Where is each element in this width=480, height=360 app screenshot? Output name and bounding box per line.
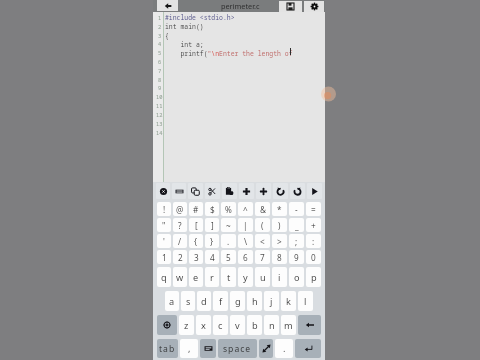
button[interactable]: 3	[189, 250, 203, 264]
button[interactable]: h	[247, 291, 262, 311]
button[interactable]: _	[289, 218, 304, 232]
button[interactable]: 7	[255, 250, 270, 264]
button[interactable]: m	[281, 315, 296, 335]
staticText: j	[270, 295, 273, 308]
button[interactable]: Redo	[290, 183, 305, 199]
button[interactable]: u	[255, 267, 270, 287]
button[interactable]: z	[179, 315, 194, 335]
button[interactable]: <	[255, 234, 270, 248]
staticText: 10	[156, 93, 163, 100]
button[interactable]: ~	[221, 218, 236, 232]
button[interactable]: ;	[289, 234, 304, 248]
button[interactable]: #	[189, 202, 203, 216]
button[interactable]: .	[275, 339, 293, 358]
button[interactable]: Close	[156, 183, 170, 199]
button[interactable]: i	[272, 267, 287, 287]
button[interactable]: !	[157, 202, 171, 216]
button[interactable]: %	[221, 202, 236, 216]
button[interactable]: Add	[239, 183, 254, 199]
button[interactable]: tab	[157, 339, 178, 358]
button[interactable]: f	[213, 291, 228, 311]
staticText: {	[165, 31, 169, 40]
button[interactable]: q	[157, 267, 171, 287]
button[interactable]: Run	[307, 183, 322, 199]
button[interactable]: 0	[306, 250, 321, 264]
button[interactable]: |	[238, 218, 253, 232]
button[interactable]	[157, 315, 177, 335]
button[interactable]: )	[272, 218, 287, 232]
button[interactable]	[295, 339, 321, 358]
button[interactable]: ?	[173, 218, 187, 232]
button[interactable]	[259, 339, 273, 358]
button[interactable]: Keyboard	[172, 183, 186, 199]
button[interactable]: \	[238, 234, 253, 248]
button[interactable]: g	[230, 291, 245, 311]
button[interactable]: .	[221, 234, 236, 248]
button[interactable]: o	[289, 267, 304, 287]
button[interactable]: *	[272, 202, 287, 216]
button[interactable]: }	[205, 234, 219, 248]
button[interactable]: Paste	[222, 183, 237, 199]
button[interactable]: a	[165, 291, 179, 311]
button[interactable]: 9	[289, 250, 304, 264]
button[interactable]: >	[272, 234, 287, 248]
button[interactable]: k	[281, 291, 296, 311]
button[interactable]: Copy	[188, 183, 203, 199]
staticText: 4	[158, 40, 162, 47]
button[interactable]: p	[306, 267, 321, 287]
button[interactable]: =	[306, 202, 321, 216]
button[interactable]: Move	[256, 183, 271, 199]
button[interactable]: '	[157, 234, 171, 248]
staticText: '	[163, 236, 165, 247]
staticText: e	[193, 271, 199, 284]
button[interactable]: 4	[205, 250, 219, 264]
button[interactable]: 6	[238, 250, 253, 264]
button[interactable]: ,	[180, 339, 198, 358]
button[interactable]: s	[181, 291, 195, 311]
button[interactable]: l	[298, 291, 313, 311]
staticText: n	[269, 319, 275, 332]
button[interactable]: {	[189, 234, 203, 248]
button[interactable]: $	[205, 202, 219, 216]
button[interactable]: Settings	[304, 1, 324, 12]
staticText: 11	[156, 102, 163, 109]
button[interactable]: &	[255, 202, 270, 216]
button[interactable]: Undo	[273, 183, 288, 199]
button[interactable]	[200, 339, 216, 358]
button[interactable]: c	[213, 315, 228, 335]
button[interactable]: b	[247, 315, 262, 335]
button[interactable]: /	[173, 234, 187, 248]
button[interactable]: v	[230, 315, 245, 335]
button[interactable]: ^	[238, 202, 253, 216]
button[interactable]: n	[264, 315, 279, 335]
button[interactable]: 8	[272, 250, 287, 264]
button[interactable]: y	[238, 267, 253, 287]
button[interactable]: @	[173, 202, 187, 216]
button[interactable]: w	[173, 267, 187, 287]
button[interactable]: "	[157, 218, 171, 232]
button[interactable]: e	[189, 267, 203, 287]
button[interactable]: Cut	[205, 183, 220, 199]
staticText: u	[260, 271, 266, 284]
button[interactable]	[298, 315, 321, 335]
button[interactable]: [	[189, 218, 203, 232]
button[interactable]: 1	[157, 250, 171, 264]
button[interactable]: d	[197, 291, 211, 311]
button[interactable]: Save	[279, 1, 302, 12]
button[interactable]: x	[196, 315, 211, 335]
button[interactable]: -	[289, 202, 304, 216]
button[interactable]: r	[205, 267, 219, 287]
staticText: y	[243, 271, 248, 284]
button[interactable]: 5	[221, 250, 236, 264]
staticText: l	[304, 295, 307, 308]
button[interactable]: (	[255, 218, 270, 232]
button[interactable]: 2	[173, 250, 187, 264]
button[interactable]: :	[306, 234, 321, 248]
button[interactable]: ]	[205, 218, 219, 232]
button[interactable]: j	[264, 291, 279, 311]
button[interactable]: space	[218, 339, 257, 358]
button[interactable]: +	[306, 218, 321, 232]
staticText: k	[286, 295, 291, 308]
button[interactable]: t	[221, 267, 236, 287]
button[interactable]: Back	[157, 0, 178, 11]
